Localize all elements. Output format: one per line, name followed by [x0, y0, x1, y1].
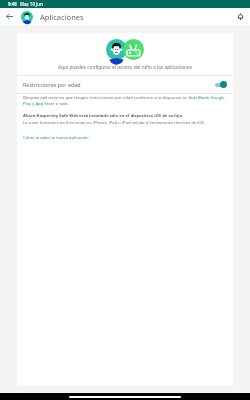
staticText: Bloquea aplicaciones que tengan restricc… [23, 95, 227, 106]
staticText: Restricciones por edad [23, 81, 81, 88]
staticText: Aplicaciones [40, 12, 84, 22]
button[interactable]: Back [0, 8, 18, 25]
staticText: Lo usan funciones no funcionan en iPhone… [23, 120, 205, 126]
button[interactable]: Notifications [230, 8, 250, 25]
staticText: Aquí puedes configurar el acceso del niñ… [17, 64, 233, 71]
button[interactable]: Cómo instalar la nueva aplicación [23, 135, 89, 141]
staticText: 9:48 [8, 1, 17, 7]
staticText: Ahora Kaspersky Safe Kids está instalado… [23, 113, 184, 119]
staticText: Cómo instalar la nueva aplicación [23, 135, 89, 141]
staticText: Mar, 10 Jun [20, 1, 43, 7]
button[interactable]: Restricciones por edad [17, 76, 233, 93]
